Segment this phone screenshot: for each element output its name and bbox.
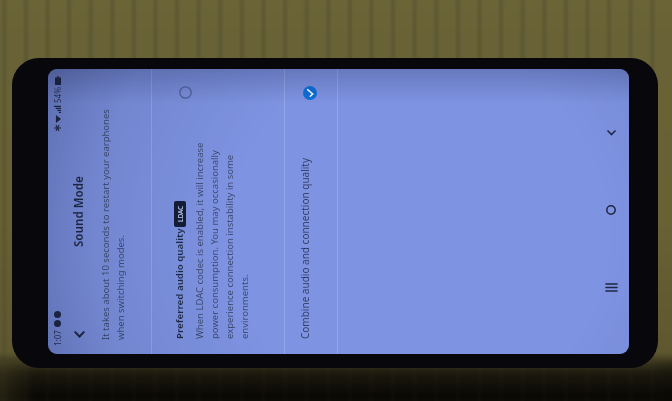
button[interactable]: Back (594, 117, 628, 149)
staticText: LDAC (176, 205, 185, 222)
staticText: Combine audio and connection quality (298, 157, 312, 339)
button[interactable]: Recent apps (594, 272, 628, 304)
staticText: 1:07 (52, 330, 63, 346)
button[interactable]: Preferred audio quality option (176, 84, 194, 102)
button[interactable]: Combine audio and connection quality opt… (301, 84, 319, 102)
staticText: Preferred audio quality (173, 228, 186, 339)
staticText: 54% (52, 87, 63, 103)
button[interactable]: Back (64, 320, 94, 350)
staticText: Sound Mode (71, 176, 87, 247)
staticText: When LDAC codec is enabled, it will incr… (193, 128, 251, 339)
staticText: It takes about 10 seconds to restart you… (99, 88, 126, 340)
button[interactable]: Home (594, 194, 628, 226)
